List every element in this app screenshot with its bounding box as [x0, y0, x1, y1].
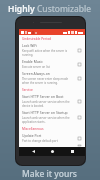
button[interactable]: Toggle Start HTTP Server on Boot — [77, 99, 82, 104]
button[interactable]: Recents — [66, 147, 78, 156]
staticText: Highly — [8, 3, 37, 15]
button[interactable]: Toggle Enable Music — [77, 62, 82, 67]
staticText: Enable Music — [22, 59, 43, 64]
button[interactable]: Back — [27, 147, 39, 156]
staticText: Execute server on list — [22, 65, 50, 69]
staticText: Keep wifi active when the server is runn… — [22, 49, 75, 57]
staticText: Start HTTP Server on Startup — [22, 110, 68, 115]
staticText: Customizable — [37, 3, 92, 15]
staticText: Undesirable Period — [22, 37, 52, 41]
staticText: Launch web server service when the appli… — [22, 116, 75, 124]
button[interactable]: Update Port — [19, 132, 85, 144]
button[interactable]: Toggle Start HTTP Server on Startup — [77, 115, 82, 120]
button[interactable]: Toggle Lock WiFi — [77, 48, 82, 53]
button[interactable]: Password Verification — [19, 144, 85, 147]
staticText: Make it yours — [22, 168, 78, 180]
staticText: Miscellaneous — [22, 127, 44, 131]
button[interactable]: Lock WiFi — [19, 42, 85, 58]
staticText: Start HTTP Server on Boot — [22, 94, 64, 99]
staticText: Lock WiFi — [22, 43, 37, 48]
staticText: The screen never enter sleep mode when t… — [22, 77, 75, 85]
button[interactable]: Enable Music — [19, 58, 85, 70]
button[interactable]: Start HTTP Server on Startup — [19, 109, 85, 125]
button[interactable]: Toggle Update Port — [77, 136, 82, 141]
staticText: Launch web server service when the devic… — [22, 100, 75, 108]
button[interactable]: Toggle Screen Always-on — [77, 76, 82, 81]
staticText: Update Port — [22, 133, 42, 138]
staticText: Screen Always-on — [22, 71, 50, 76]
staticText: Service — [22, 88, 33, 92]
staticText: Port to change default port — [22, 139, 58, 143]
button[interactable]: Home — [46, 147, 58, 156]
button[interactable]: Start HTTP Server on Boot — [19, 93, 85, 109]
button[interactable]: Toggle Password Verification — [77, 145, 82, 146]
button[interactable]: Screen Always-on — [19, 70, 85, 86]
